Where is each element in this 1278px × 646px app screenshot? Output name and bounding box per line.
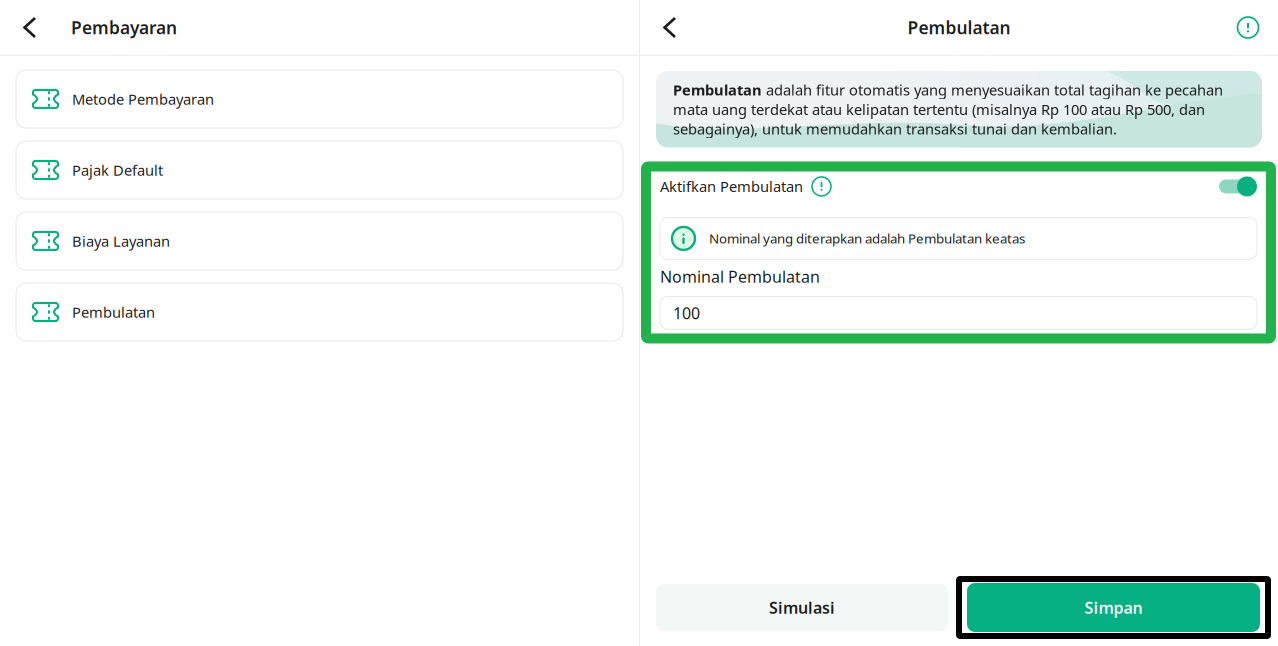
staticText: Pembayaran (71, 16, 177, 39)
staticText: Simpan (1084, 597, 1142, 618)
button[interactable]: 100 (660, 296, 1257, 329)
staticText: Simulasi (769, 597, 835, 618)
button[interactable]: Metode Pembayaran (16, 70, 623, 128)
button[interactable]: Information (1228, 7, 1268, 47)
staticText: Metode Pembayaran (72, 89, 214, 109)
button[interactable]: Biaya Layanan (16, 212, 623, 270)
button[interactable]: Aktifkan Pembulatan (1219, 175, 1257, 197)
button[interactable]: Simulasi (656, 576, 948, 639)
button[interactable]: Back (9, 4, 51, 50)
staticText: 100 (673, 302, 700, 323)
staticText: Aktifkan Pembulatan (660, 177, 803, 196)
staticText: Biaya Layanan (72, 231, 170, 251)
staticText: Pembulatan (72, 302, 155, 322)
button[interactable]: Simpan (959, 579, 1268, 636)
staticText: Pembulatan adalah fitur otomatis yang me… (673, 80, 1223, 138)
staticText: Nominal Pembulatan (660, 266, 820, 287)
button[interactable]: Pajak Default (16, 141, 623, 199)
staticText: Pajak Default (72, 160, 163, 180)
staticText: Nominal yang diterapkan adalah Pembulata… (709, 230, 1025, 247)
button[interactable]: Back (649, 4, 691, 50)
button[interactable]: Pembulatan (16, 283, 623, 341)
staticText: Pembulatan (907, 16, 1010, 39)
